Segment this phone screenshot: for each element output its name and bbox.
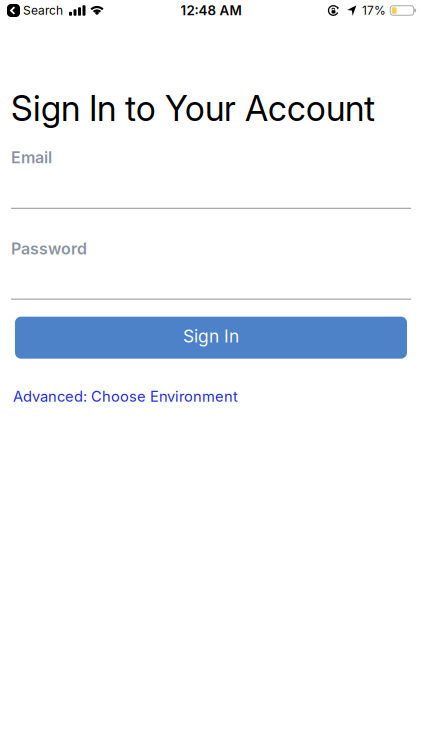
staticText: Password — [11, 239, 87, 258]
staticText: Email — [11, 148, 52, 167]
staticText: Advanced: Choose Environment — [13, 388, 238, 405]
button[interactable]: Email — [0, 148, 422, 209]
staticText: Sign In to Your Account — [11, 88, 375, 129]
button[interactable]: Advanced: Choose Environment — [13, 388, 238, 405]
staticText: 12:48 AM — [180, 3, 241, 18]
staticText: 17% — [362, 3, 386, 18]
button[interactable]: Password — [0, 239, 422, 300]
button[interactable]: Sign In — [15, 317, 407, 359]
staticText: Sign In — [183, 326, 239, 346]
staticText: Search — [23, 3, 63, 18]
